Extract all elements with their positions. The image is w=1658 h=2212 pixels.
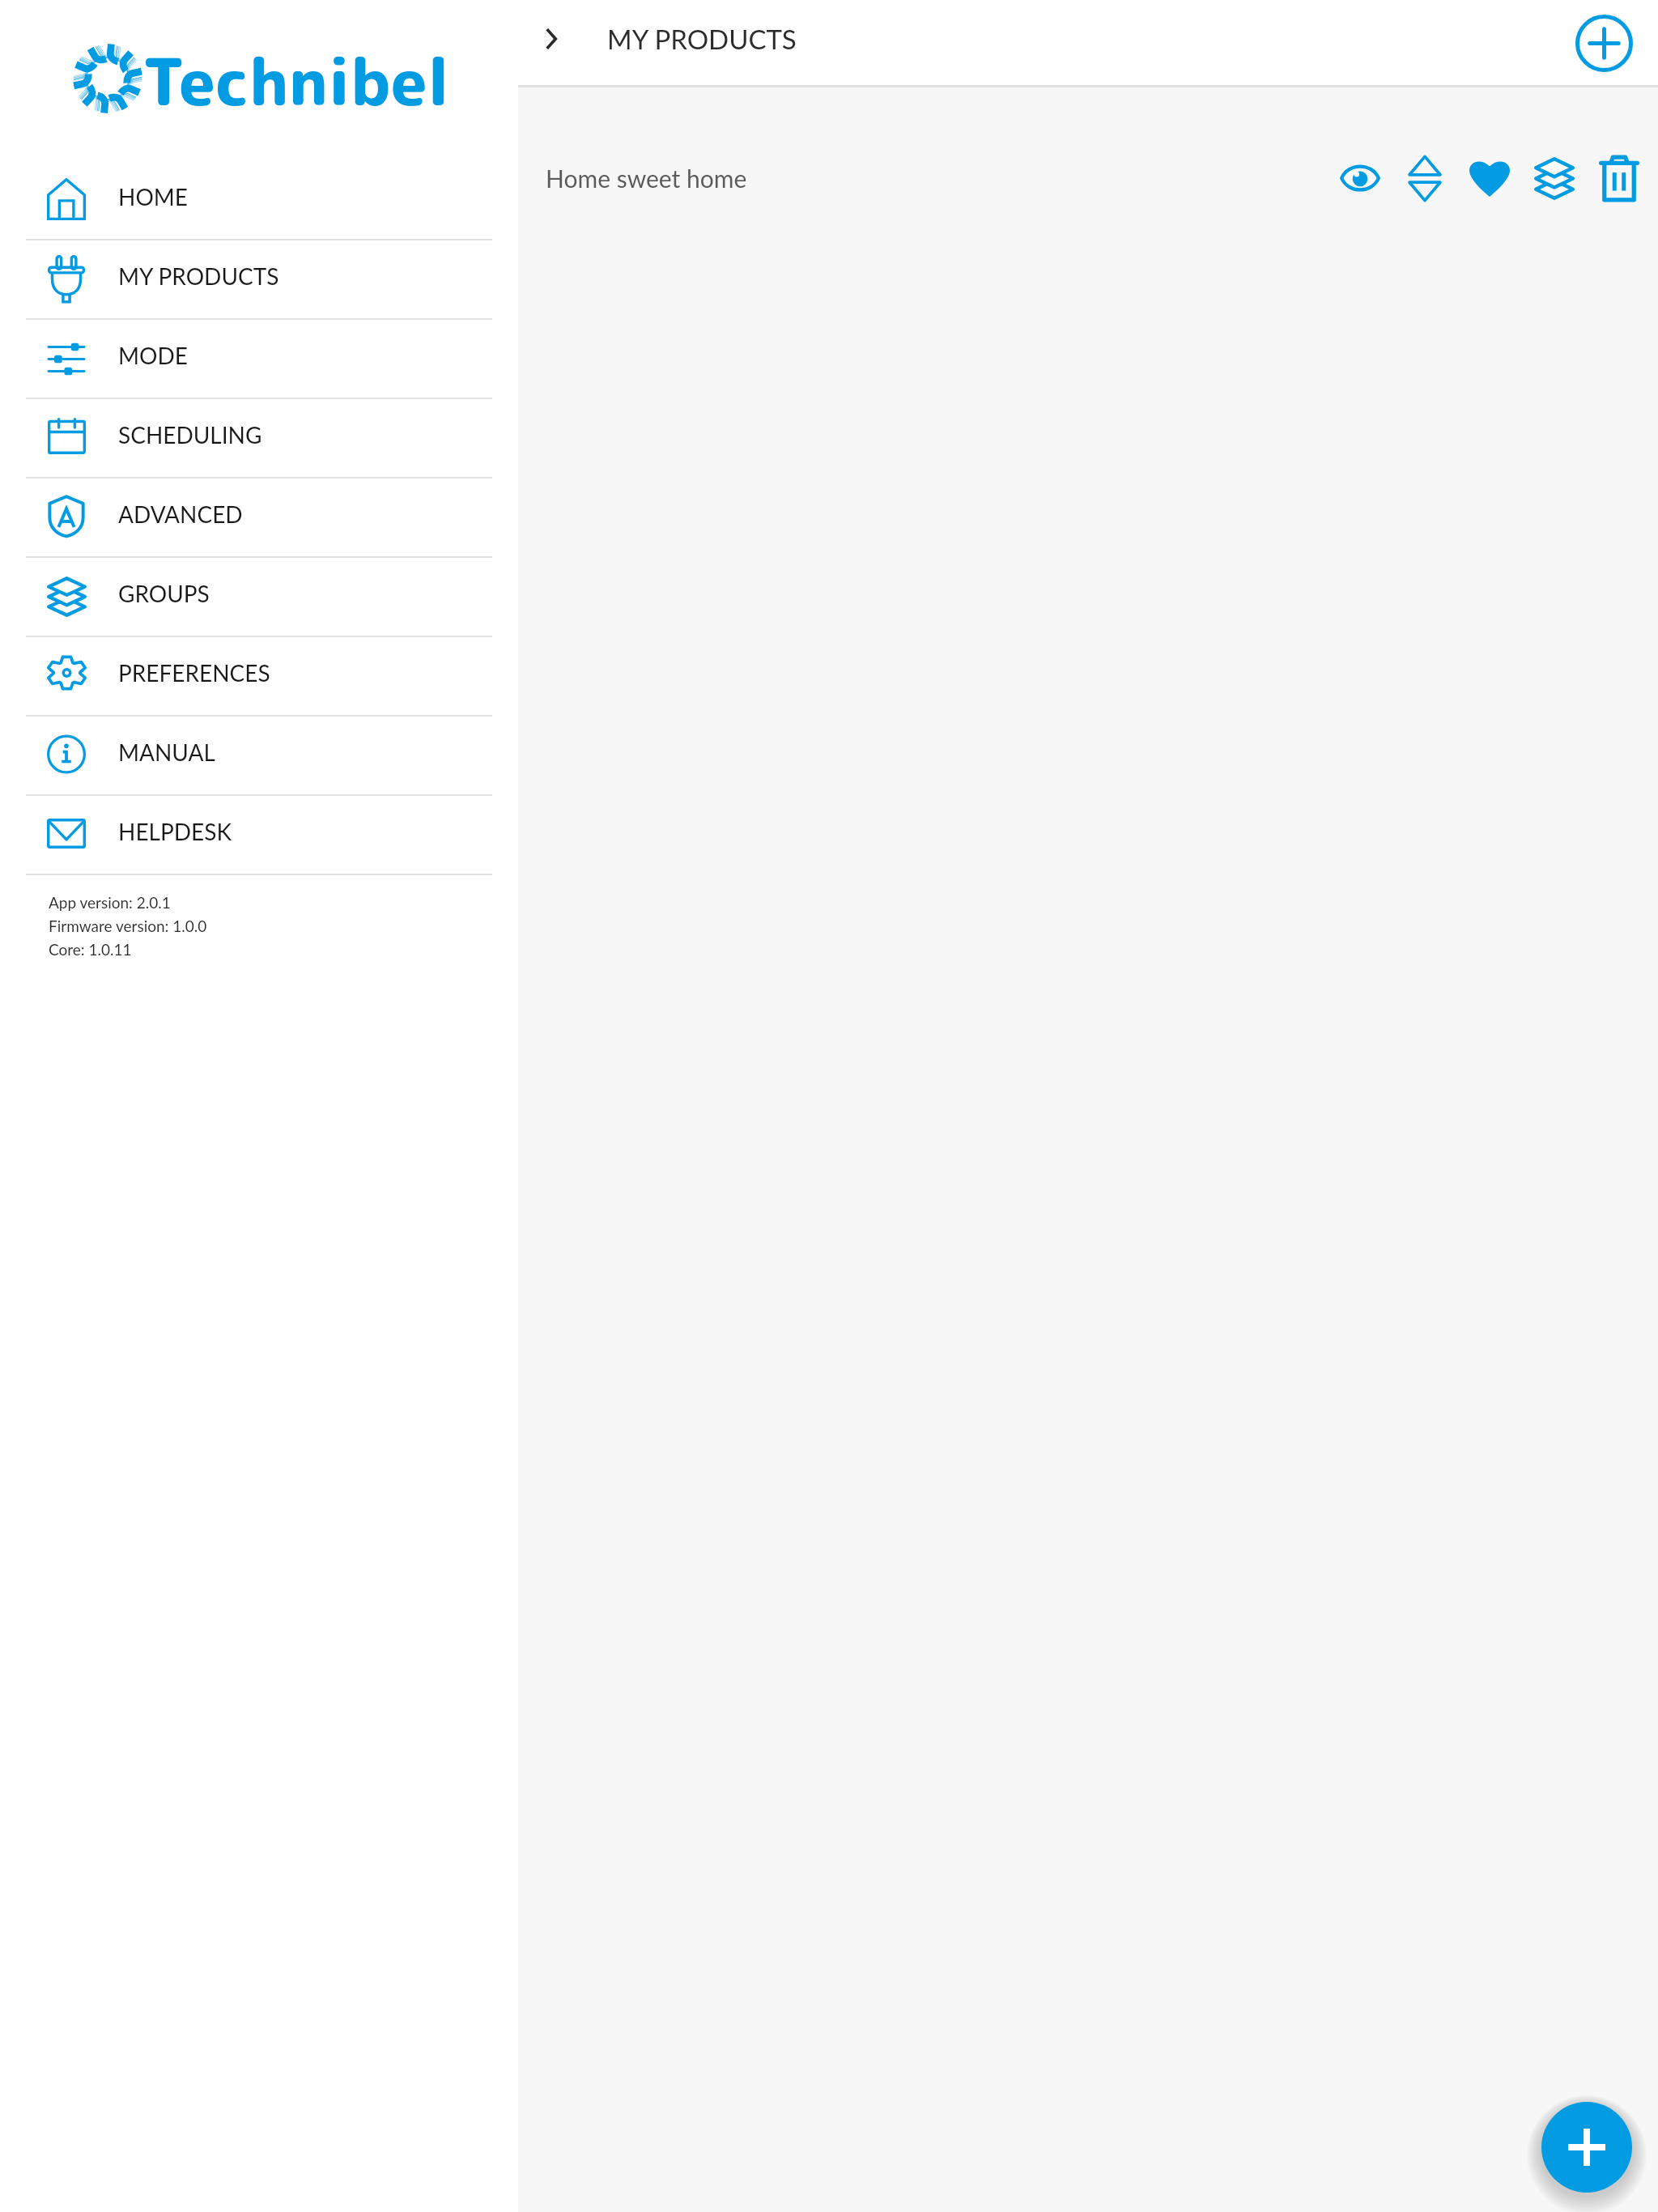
staticText: Home sweet home xyxy=(546,164,747,193)
button[interactable]: MANUAL xyxy=(0,717,518,794)
staticText: App version: 2.0.1 xyxy=(49,893,171,912)
button[interactable]: Delete xyxy=(1587,87,1652,269)
staticText: PREFERENCES xyxy=(118,659,270,687)
button[interactable]: Preview xyxy=(1328,87,1392,269)
button[interactable]: ADVANCED xyxy=(0,479,518,556)
button[interactable]: Reorder xyxy=(1392,87,1457,269)
staticText: SCHEDULING xyxy=(118,421,262,449)
button[interactable]: GROUPS xyxy=(0,558,518,636)
button[interactable]: Home sweet home xyxy=(518,87,1658,269)
staticText: GROUPS xyxy=(118,580,210,607)
button[interactable]: Open navigation xyxy=(518,0,585,87)
staticText: HELPDESK xyxy=(118,818,232,845)
button[interactable]: HELPDESK xyxy=(0,796,518,874)
staticText: MY PRODUCTS xyxy=(607,23,797,55)
button[interactable]: SCHEDULING xyxy=(0,399,518,477)
button[interactable]: Add xyxy=(1541,2102,1632,2193)
staticText: MY PRODUCTS xyxy=(118,262,279,290)
staticText: HOME xyxy=(118,183,188,211)
button[interactable]: PREFERENCES xyxy=(0,637,518,715)
button[interactable]: Groups xyxy=(1522,87,1587,269)
staticText: MANUAL xyxy=(118,738,215,766)
button[interactable]: MY PRODUCTS xyxy=(0,240,518,318)
button[interactable]: Favorite xyxy=(1457,87,1522,269)
button[interactable]: HOME xyxy=(0,161,518,239)
staticText: ADVANCED xyxy=(118,500,243,528)
staticText: Technibel xyxy=(142,36,450,125)
button[interactable]: MODE xyxy=(0,320,518,398)
button[interactable]: Add product xyxy=(1559,0,1648,87)
staticText: MODE xyxy=(118,342,188,369)
staticText: Firmware version: 1.0.0 xyxy=(49,917,207,935)
staticText: Core: 1.0.11 xyxy=(49,940,132,959)
